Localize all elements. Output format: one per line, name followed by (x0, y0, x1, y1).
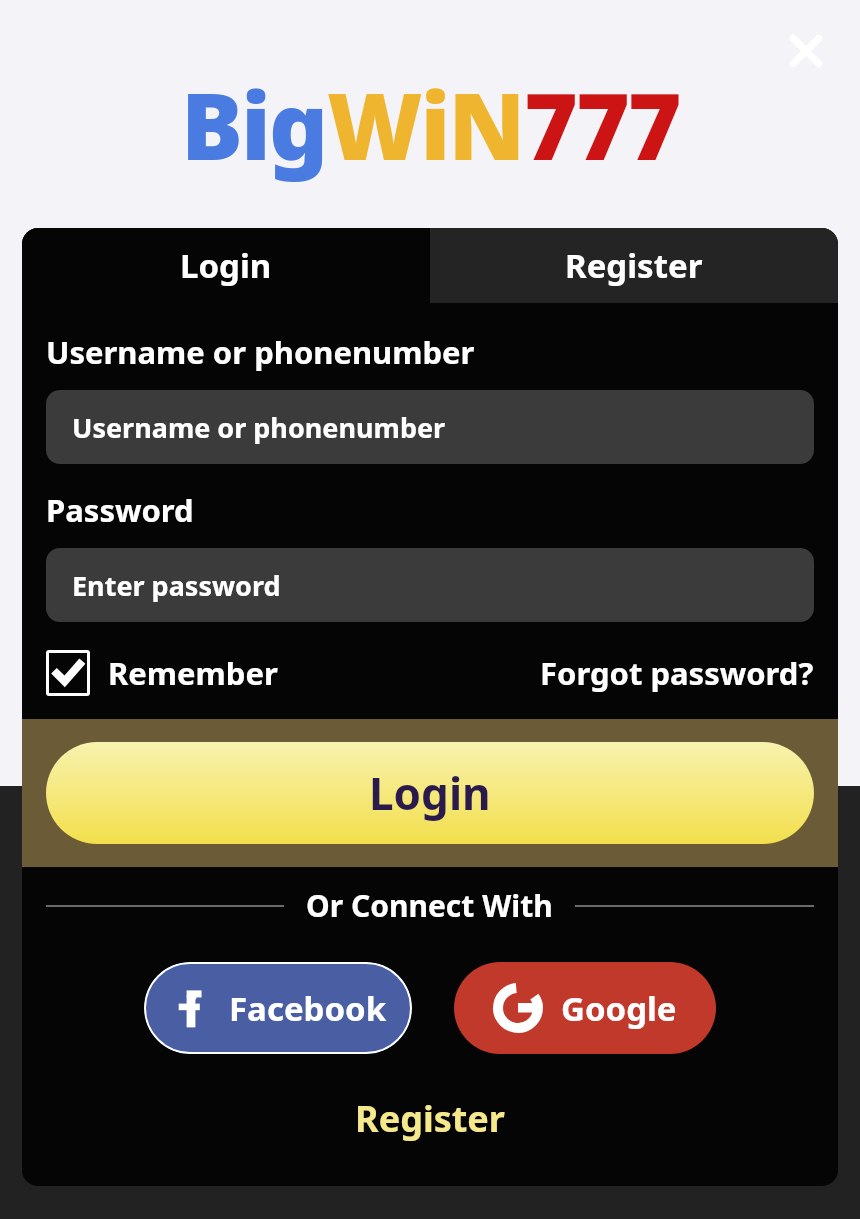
staticText: 777 (524, 62, 680, 187)
staticText: Facebook (229, 986, 387, 1031)
button[interactable]: Facebook (144, 962, 412, 1054)
button[interactable]: Login (46, 742, 814, 844)
staticText: WiN (327, 62, 524, 187)
staticText: Remember (108, 652, 278, 694)
button[interactable]: Google (454, 962, 716, 1054)
staticText: Big (181, 62, 327, 187)
button[interactable]: Register (355, 1094, 505, 1143)
staticText: Or Connect With (306, 885, 553, 926)
staticText: Google (561, 986, 677, 1031)
button[interactable]: Login (22, 228, 430, 303)
staticText: Password (46, 489, 194, 531)
button[interactable]: Close (775, 20, 837, 82)
staticText: Login (369, 763, 491, 823)
staticText: Username or phonenumber (72, 409, 446, 446)
staticText: Enter password (72, 567, 281, 604)
button[interactable]: Register (430, 228, 838, 303)
staticText: Register (355, 1094, 505, 1143)
staticText: Forgot password? (540, 652, 814, 694)
staticText: Login (180, 243, 272, 288)
staticText: Register (565, 243, 703, 288)
button[interactable]: Remember (46, 650, 278, 696)
staticText: Username or phonenumber (46, 331, 475, 373)
button[interactable]: Forgot password? (540, 652, 814, 694)
button[interactable]: Username or phonenumber (46, 390, 814, 464)
button[interactable]: Enter password (46, 548, 814, 622)
